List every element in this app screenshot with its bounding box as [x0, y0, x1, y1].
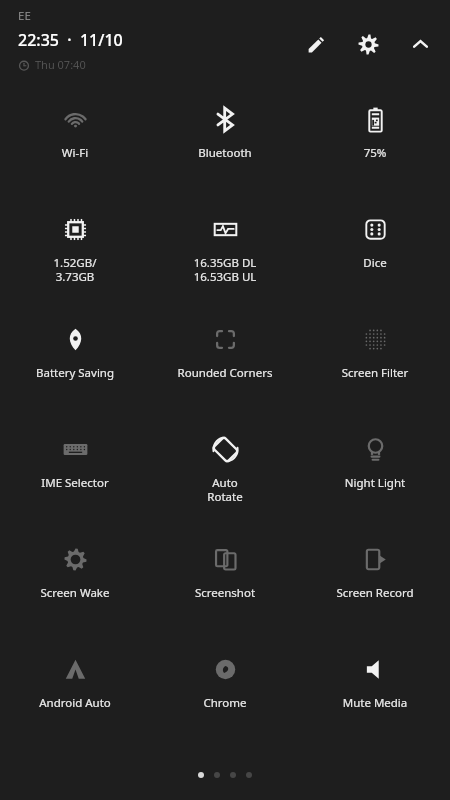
staticText: Night Light — [302, 475, 448, 491]
staticText: Rounded Corners — [152, 365, 298, 381]
staticText: Screenshot — [152, 585, 298, 601]
staticText: EE — [18, 8, 31, 24]
staticText: Battery Saving — [2, 365, 148, 381]
staticText: Wi-Fi — [2, 145, 148, 161]
button[interactable]: Auto Rotate — [150, 422, 300, 532]
button[interactable]: Screen Record — [300, 532, 450, 642]
button[interactable]: Mute Media — [300, 642, 450, 752]
staticText: Screen Wake — [2, 585, 148, 601]
button[interactable]: 1.52GB/ 3.73GB — [0, 202, 150, 312]
staticText: 1.52GB/ 3.73GB — [2, 255, 148, 284]
staticText: IME Selector — [2, 475, 148, 491]
staticText: 75% — [302, 145, 448, 161]
staticText: Android Auto — [2, 695, 148, 711]
button[interactable]: Night Light — [300, 422, 450, 532]
staticText: Thu 07:40 — [35, 57, 86, 72]
button[interactable]: IME Selector — [0, 422, 150, 532]
button[interactable]: Collapse — [400, 24, 440, 64]
staticText: 16.35GB DL 16.53GB UL — [152, 255, 298, 284]
button[interactable]: 16.35GB DL 16.53GB UL — [150, 202, 300, 312]
button[interactable]: Dice — [300, 202, 450, 312]
button[interactable]: Screenshot — [150, 532, 300, 642]
staticText: Dice — [302, 255, 448, 271]
button[interactable]: Android Auto — [0, 642, 150, 752]
button[interactable]: Wi-Fi — [0, 92, 150, 202]
staticText: 22:35 · 11/10 — [18, 29, 123, 51]
button[interactable]: Settings — [348, 24, 388, 64]
button[interactable]: Screen Wake — [0, 532, 150, 642]
button[interactable]: Chrome — [150, 642, 300, 752]
staticText: Screen Filter — [302, 365, 448, 381]
button[interactable]: Bluetooth — [150, 92, 300, 202]
staticText: Screen Record — [302, 585, 448, 601]
staticText: Bluetooth — [152, 145, 298, 161]
button[interactable]: Rounded Corners — [150, 312, 300, 422]
staticText: Mute Media — [302, 695, 448, 711]
staticText: Chrome — [152, 695, 298, 711]
staticText: Auto Rotate — [152, 475, 298, 504]
button[interactable]: Edit tiles — [296, 24, 336, 64]
button[interactable]: Screen Filter — [300, 312, 450, 422]
button[interactable]: 75% — [300, 92, 450, 202]
button[interactable]: Battery Saving — [0, 312, 150, 422]
